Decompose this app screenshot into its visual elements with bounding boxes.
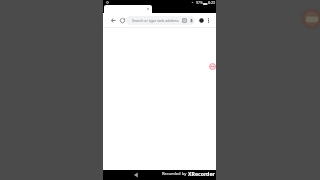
button[interactable]: Close tab (146, 7, 150, 11)
button[interactable]: Profile (197, 16, 206, 25)
button[interactable]: Notification bubble (209, 63, 216, 70)
staticText: XRecorder (188, 170, 215, 177)
staticText: Search or type web address (132, 18, 179, 23)
button[interactable]: Search or type web address (126, 16, 195, 25)
staticText: Recorded by (162, 171, 188, 177)
button[interactable]: Back (109, 16, 118, 25)
button[interactable]: Close tab (104, 5, 152, 13)
button[interactable]: Back (132, 171, 140, 179)
button[interactable]: More options (204, 16, 213, 25)
button[interactable]: Screen recorder widget (300, 7, 320, 30)
staticText: 8:23 (208, 0, 216, 5)
staticText: 97% (196, 0, 203, 5)
button[interactable]: Reload (118, 16, 127, 25)
